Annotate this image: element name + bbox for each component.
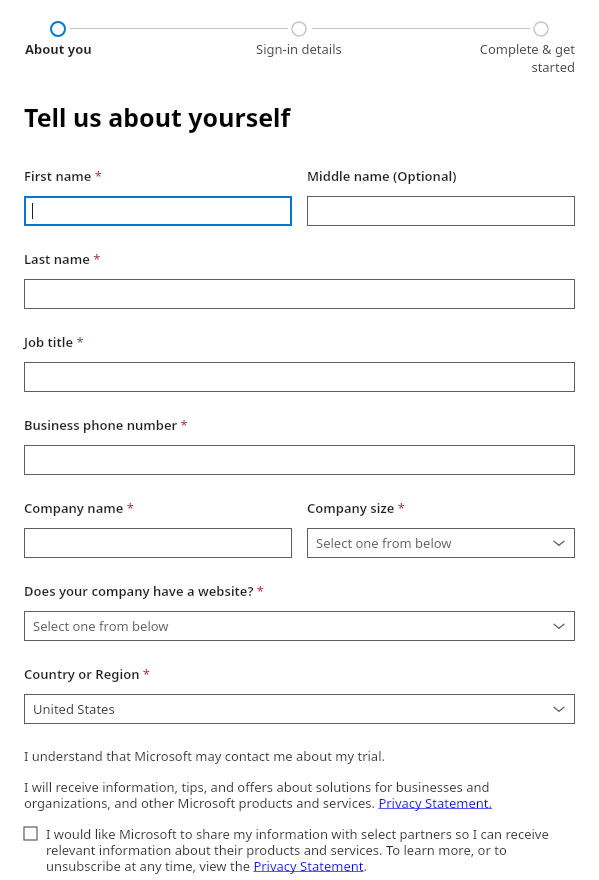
button[interactable]: Last name [24, 279, 575, 309]
button[interactable]: Complete & get started [451, 40, 575, 76]
button[interactable]: I would like Microsoft to share my infor… [24, 825, 575, 874]
staticText: I would like Microsoft to share my infor… [46, 825, 575, 874]
staticText: First name * [24, 167, 102, 185]
staticText: I will receive information, tips, and of… [24, 778, 575, 811]
staticText: Select one from below [33, 617, 169, 635]
staticText: Complete & get started [451, 40, 575, 76]
button[interactable]: Job title [24, 362, 575, 392]
staticText: Company name * [24, 499, 134, 517]
staticText: Business phone number * [24, 416, 188, 434]
staticText: Sign-in details [256, 40, 342, 58]
staticText: Tell us about yourself [24, 100, 291, 134]
button[interactable]: Middle name [307, 196, 575, 226]
staticText: Middle name (Optional) [307, 167, 457, 185]
staticText: Last name * [24, 250, 101, 268]
button[interactable]: Company size [307, 528, 575, 558]
button[interactable]: Business phone number [24, 445, 575, 475]
staticText: United States [33, 700, 115, 718]
staticText: About you [25, 40, 92, 58]
button[interactable]: First name [24, 196, 292, 226]
staticText: Company size * [307, 499, 405, 517]
button[interactable]: Does your company have a website? [24, 611, 575, 641]
staticText: Country or Region * [24, 665, 151, 683]
button[interactable]: Country or Region [24, 694, 575, 724]
staticText: Job title * [24, 333, 84, 351]
staticText: I understand that Microsoft may contact … [24, 747, 385, 765]
staticText: Does your company have a website? * [24, 582, 264, 600]
button[interactable]: Company name [24, 528, 292, 558]
button[interactable]: About you [0, 40, 116, 58]
button[interactable]: Sign-in details [219, 40, 379, 58]
staticText: Select one from below [316, 534, 452, 552]
